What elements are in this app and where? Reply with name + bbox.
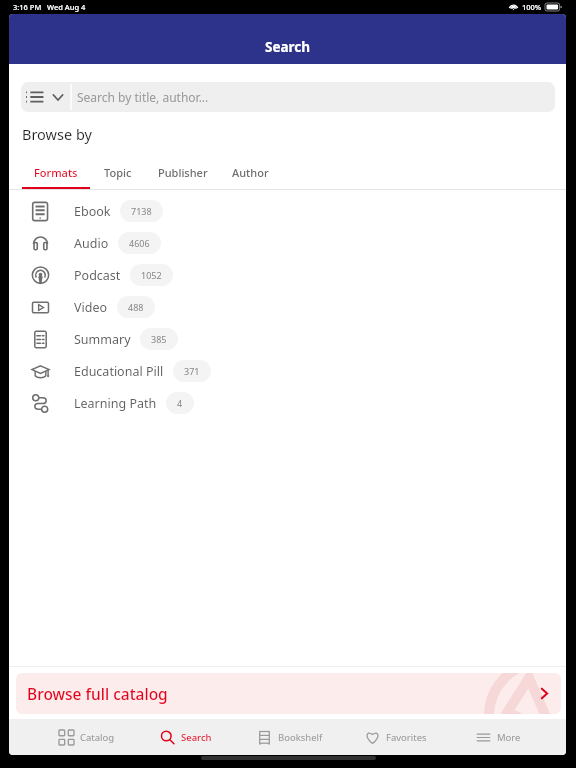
- button[interactable]: Podcast: [9, 259, 566, 291]
- button[interactable]: Browse full catalog: [16, 673, 561, 714]
- staticText: Bookshelf: [278, 731, 323, 744]
- staticText: Catalog: [80, 731, 115, 744]
- button[interactable]: Learning Path: [9, 387, 566, 419]
- button[interactable]: Topic: [90, 158, 145, 190]
- staticText: Formats: [34, 165, 78, 180]
- button[interactable]: Formats: [22, 158, 90, 190]
- button[interactable]: Ebook: [9, 195, 566, 227]
- staticText: Learning Path: [74, 395, 157, 412]
- staticText: 385: [151, 333, 167, 345]
- staticText: Publisher: [158, 165, 208, 180]
- button[interactable]: Favorites: [342, 719, 446, 755]
- button[interactable]: Publisher: [145, 158, 220, 190]
- staticText: Video: [74, 299, 108, 316]
- staticText: 371: [184, 365, 200, 377]
- button[interactable]: Search: [134, 719, 238, 755]
- staticText: Audio: [74, 235, 109, 252]
- staticText: 488: [128, 301, 144, 313]
- button[interactable]: More: [446, 719, 550, 755]
- staticText: Wed Aug 4: [47, 2, 86, 12]
- button[interactable]: Audio: [9, 227, 566, 259]
- staticText: Browse by: [22, 124, 92, 144]
- staticText: Summary: [74, 331, 131, 348]
- button[interactable]: Educational Pill: [9, 355, 566, 387]
- staticText: More: [497, 731, 521, 744]
- staticText: 3:16 PM: [13, 2, 42, 12]
- staticText: Browse full catalog: [27, 683, 168, 704]
- button[interactable]: Catalog: [30, 719, 134, 755]
- button[interactable]: Summary: [9, 323, 566, 355]
- staticText: Ebook: [74, 203, 111, 220]
- staticText: Topic: [104, 165, 132, 180]
- staticText: Search by title, author...: [77, 89, 209, 105]
- staticText: Search: [181, 731, 212, 744]
- staticText: 7138: [131, 205, 152, 217]
- staticText: Search: [265, 38, 311, 56]
- button[interactable]: Author: [220, 158, 280, 190]
- staticText: 4606: [129, 237, 150, 249]
- button[interactable]: Search by title, author...: [21, 82, 555, 112]
- button[interactable]: Bookshelf: [238, 719, 342, 755]
- button[interactable]: Video: [9, 291, 566, 323]
- staticText: 1052: [141, 269, 162, 281]
- staticText: 4: [177, 397, 183, 409]
- staticText: Author: [232, 165, 269, 180]
- staticText: 100%: [522, 2, 542, 12]
- staticText: Favorites: [386, 731, 427, 744]
- staticText: Podcast: [74, 267, 121, 284]
- staticText: Educational Pill: [74, 363, 164, 380]
